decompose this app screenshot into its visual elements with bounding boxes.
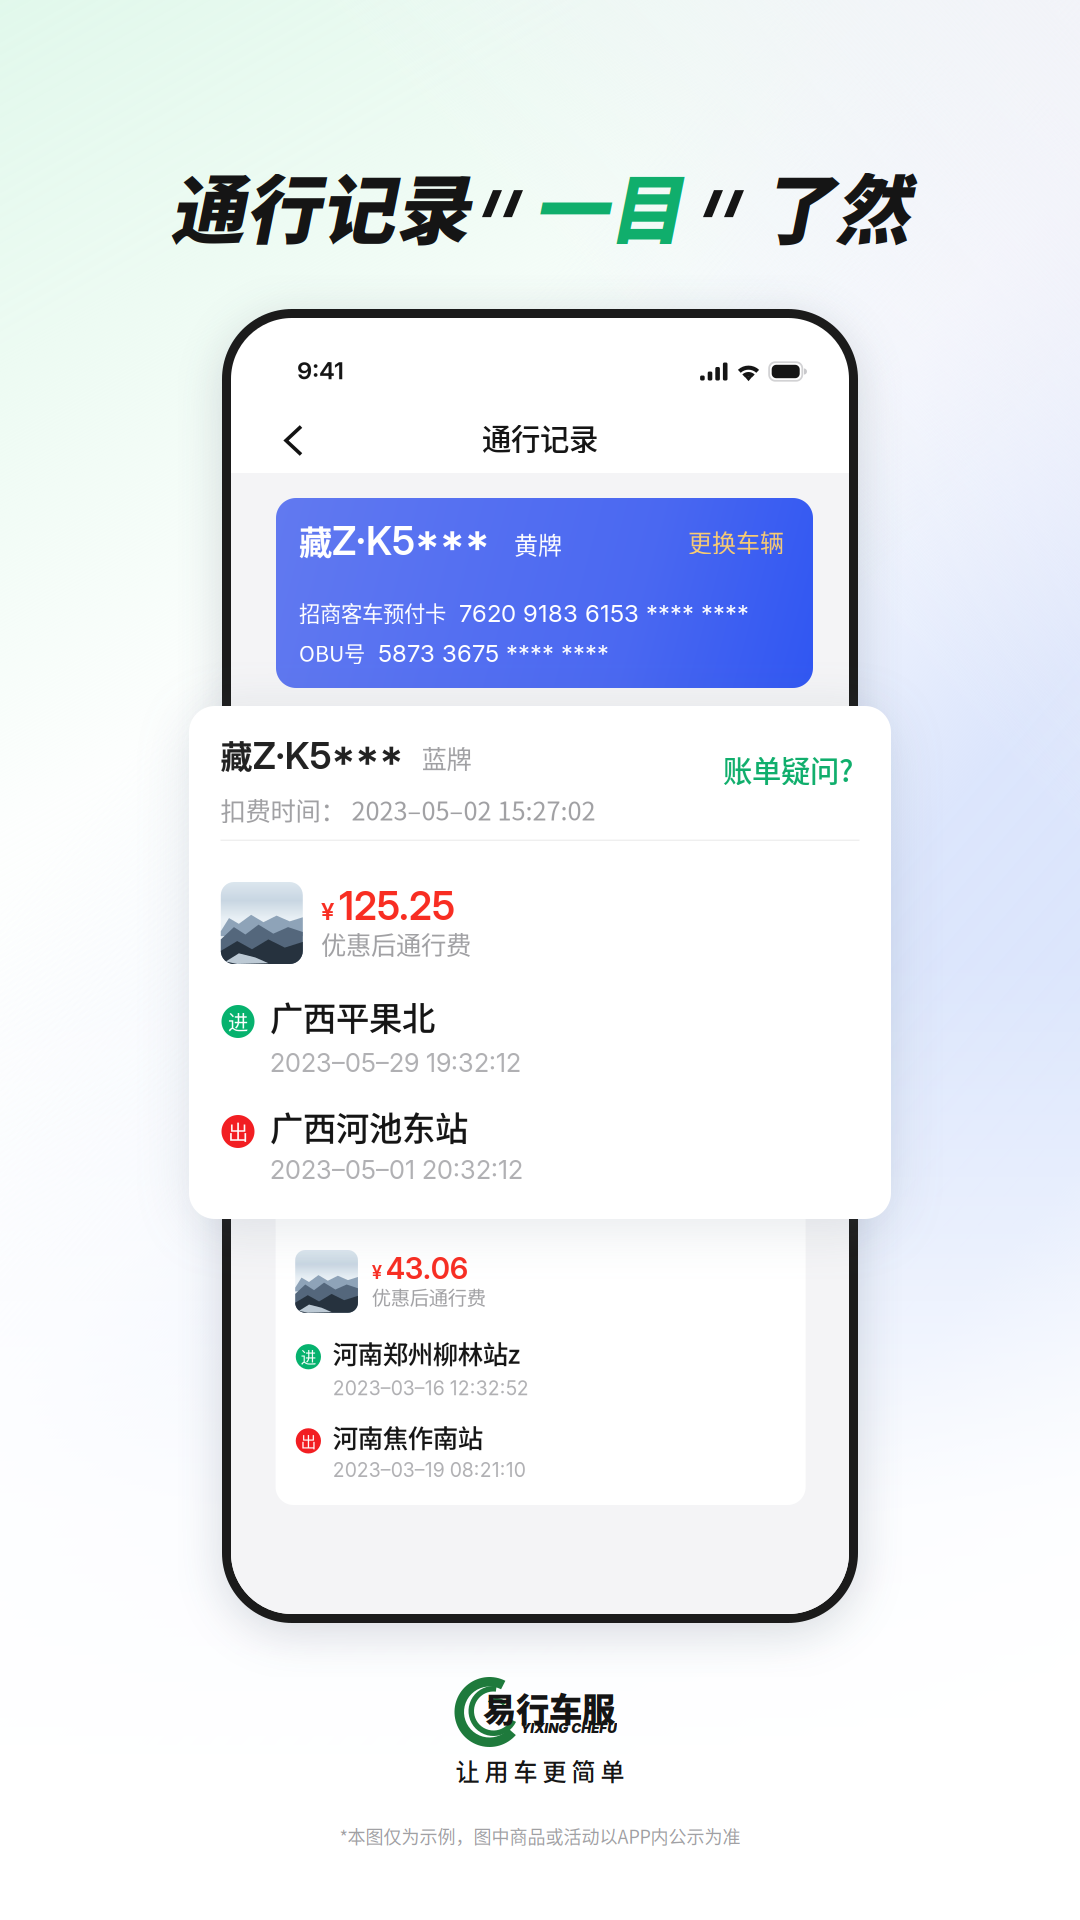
staticText: 5873 3675 **** **** [378,639,609,668]
staticText: YIXING CHEFU [520,1720,617,1736]
staticText: 河南焦作南站 [333,1418,483,1455]
staticText: 蓝牌 [421,739,471,776]
staticText: 优惠后通行费 [372,1283,486,1311]
staticText: *本图仅为示例，图中商品或活动以APP内公示为准 [339,1823,740,1849]
staticText: 2023–03–16 12:32:52 [333,1377,529,1400]
staticText: 易行车服 [483,1683,615,1731]
staticText: · [356,517,366,564]
staticText: 43.06 [386,1250,468,1286]
button[interactable]: Back [231,414,334,467]
staticText: K5*** [366,517,490,564]
staticText: 7620 9183 6153 **** **** [459,599,749,628]
staticText: 优惠后通行费 [321,925,471,962]
staticText: 2023–05–29 19:32:12 [270,1047,521,1078]
staticText: 更换车辆 [688,524,784,559]
button[interactable]: 更换车辆 [688,524,784,559]
staticText: 广西河池东站 [270,1102,468,1150]
staticText: ¥ [321,897,334,926]
staticText: 出 [301,1430,316,1452]
staticText: OBU号 [299,637,365,668]
staticText: 通行记录 [170,151,470,259]
staticText: 2023–05–01 20:32:12 [270,1154,523,1185]
staticText: 账单疑问? [723,748,853,790]
staticText: ¥ [372,1261,382,1284]
staticText: 招商客车预付卡 [299,597,446,628]
staticText: 进 [301,1345,316,1368]
staticText: 2023–03–19 08:21:10 [333,1458,526,1482]
staticText: 藏 [220,731,252,778]
staticText: 河南郑州柳林站z [333,1334,521,1371]
staticText: 扣费时间： 2023–05–02 15:27:02 [220,791,595,828]
staticText: 藏 [299,516,332,564]
staticText: 通行记录 [482,416,598,458]
staticText: 125.25 [339,882,455,929]
staticText: 黄牌 [514,526,562,561]
staticText: Z [332,517,356,564]
staticText: 了然 [760,151,910,259]
button[interactable]: 账单疑问? [723,748,853,790]
staticText: 出 [228,1117,248,1146]
staticText: · [275,733,284,778]
staticText: K5*** [284,733,403,778]
staticText: 广西平果北 [270,992,435,1040]
staticText: 进 [228,1007,248,1036]
staticText: 让 用 车 更 简 单 [455,1753,624,1788]
staticText: Z [252,733,275,778]
staticText: 9:41 [297,356,344,385]
staticText: 一目 [533,151,683,259]
